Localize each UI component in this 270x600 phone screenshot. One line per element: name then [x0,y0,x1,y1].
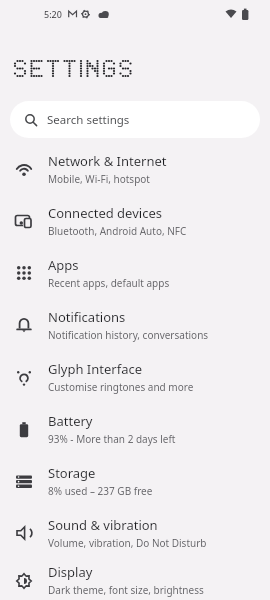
staticText: Apps [48,256,79,274]
button[interactable]: Battery [0,403,270,455]
button[interactable]: Connected devices [0,195,270,247]
staticText: Notification history, conversations [48,328,209,342]
staticText: Search settings [47,112,130,128]
staticText: 93% - More than 2 days left [48,432,176,446]
staticText: Notifications [48,308,126,326]
staticText: 8% used – 237 GB free [48,484,153,498]
button[interactable]: Sound & vibration [0,507,270,559]
staticText: Network & Internet [48,152,167,170]
staticText: Connected devices [48,204,162,222]
staticText: 5:20 [44,8,62,20]
staticText: Customise ringtones and more [48,380,194,394]
staticText: Mobile, Wi-Fi, hotspot [48,172,150,186]
staticText: Dark theme, font size, brightness [48,583,204,597]
staticText: Display [48,563,93,581]
button[interactable]: Notifications [0,299,270,351]
staticText: Volume, vibration, Do Not Disturb [48,536,207,550]
button[interactable]: Network & Internet [0,143,270,195]
staticText: Battery [48,412,93,430]
staticText: Bluetooth, Android Auto, NFC [48,224,187,238]
button[interactable]: Storage [0,455,270,507]
staticText: Sound & vibration [48,516,158,534]
staticText: Storage [48,464,96,482]
staticText: Recent apps, default apps [48,276,170,290]
button[interactable]: Apps [0,247,270,299]
staticText: Glyph Interface [48,360,143,378]
button[interactable]: Display [0,559,270,600]
button[interactable]: Search settings [10,101,260,138]
button[interactable]: Glyph Interface [0,351,270,403]
